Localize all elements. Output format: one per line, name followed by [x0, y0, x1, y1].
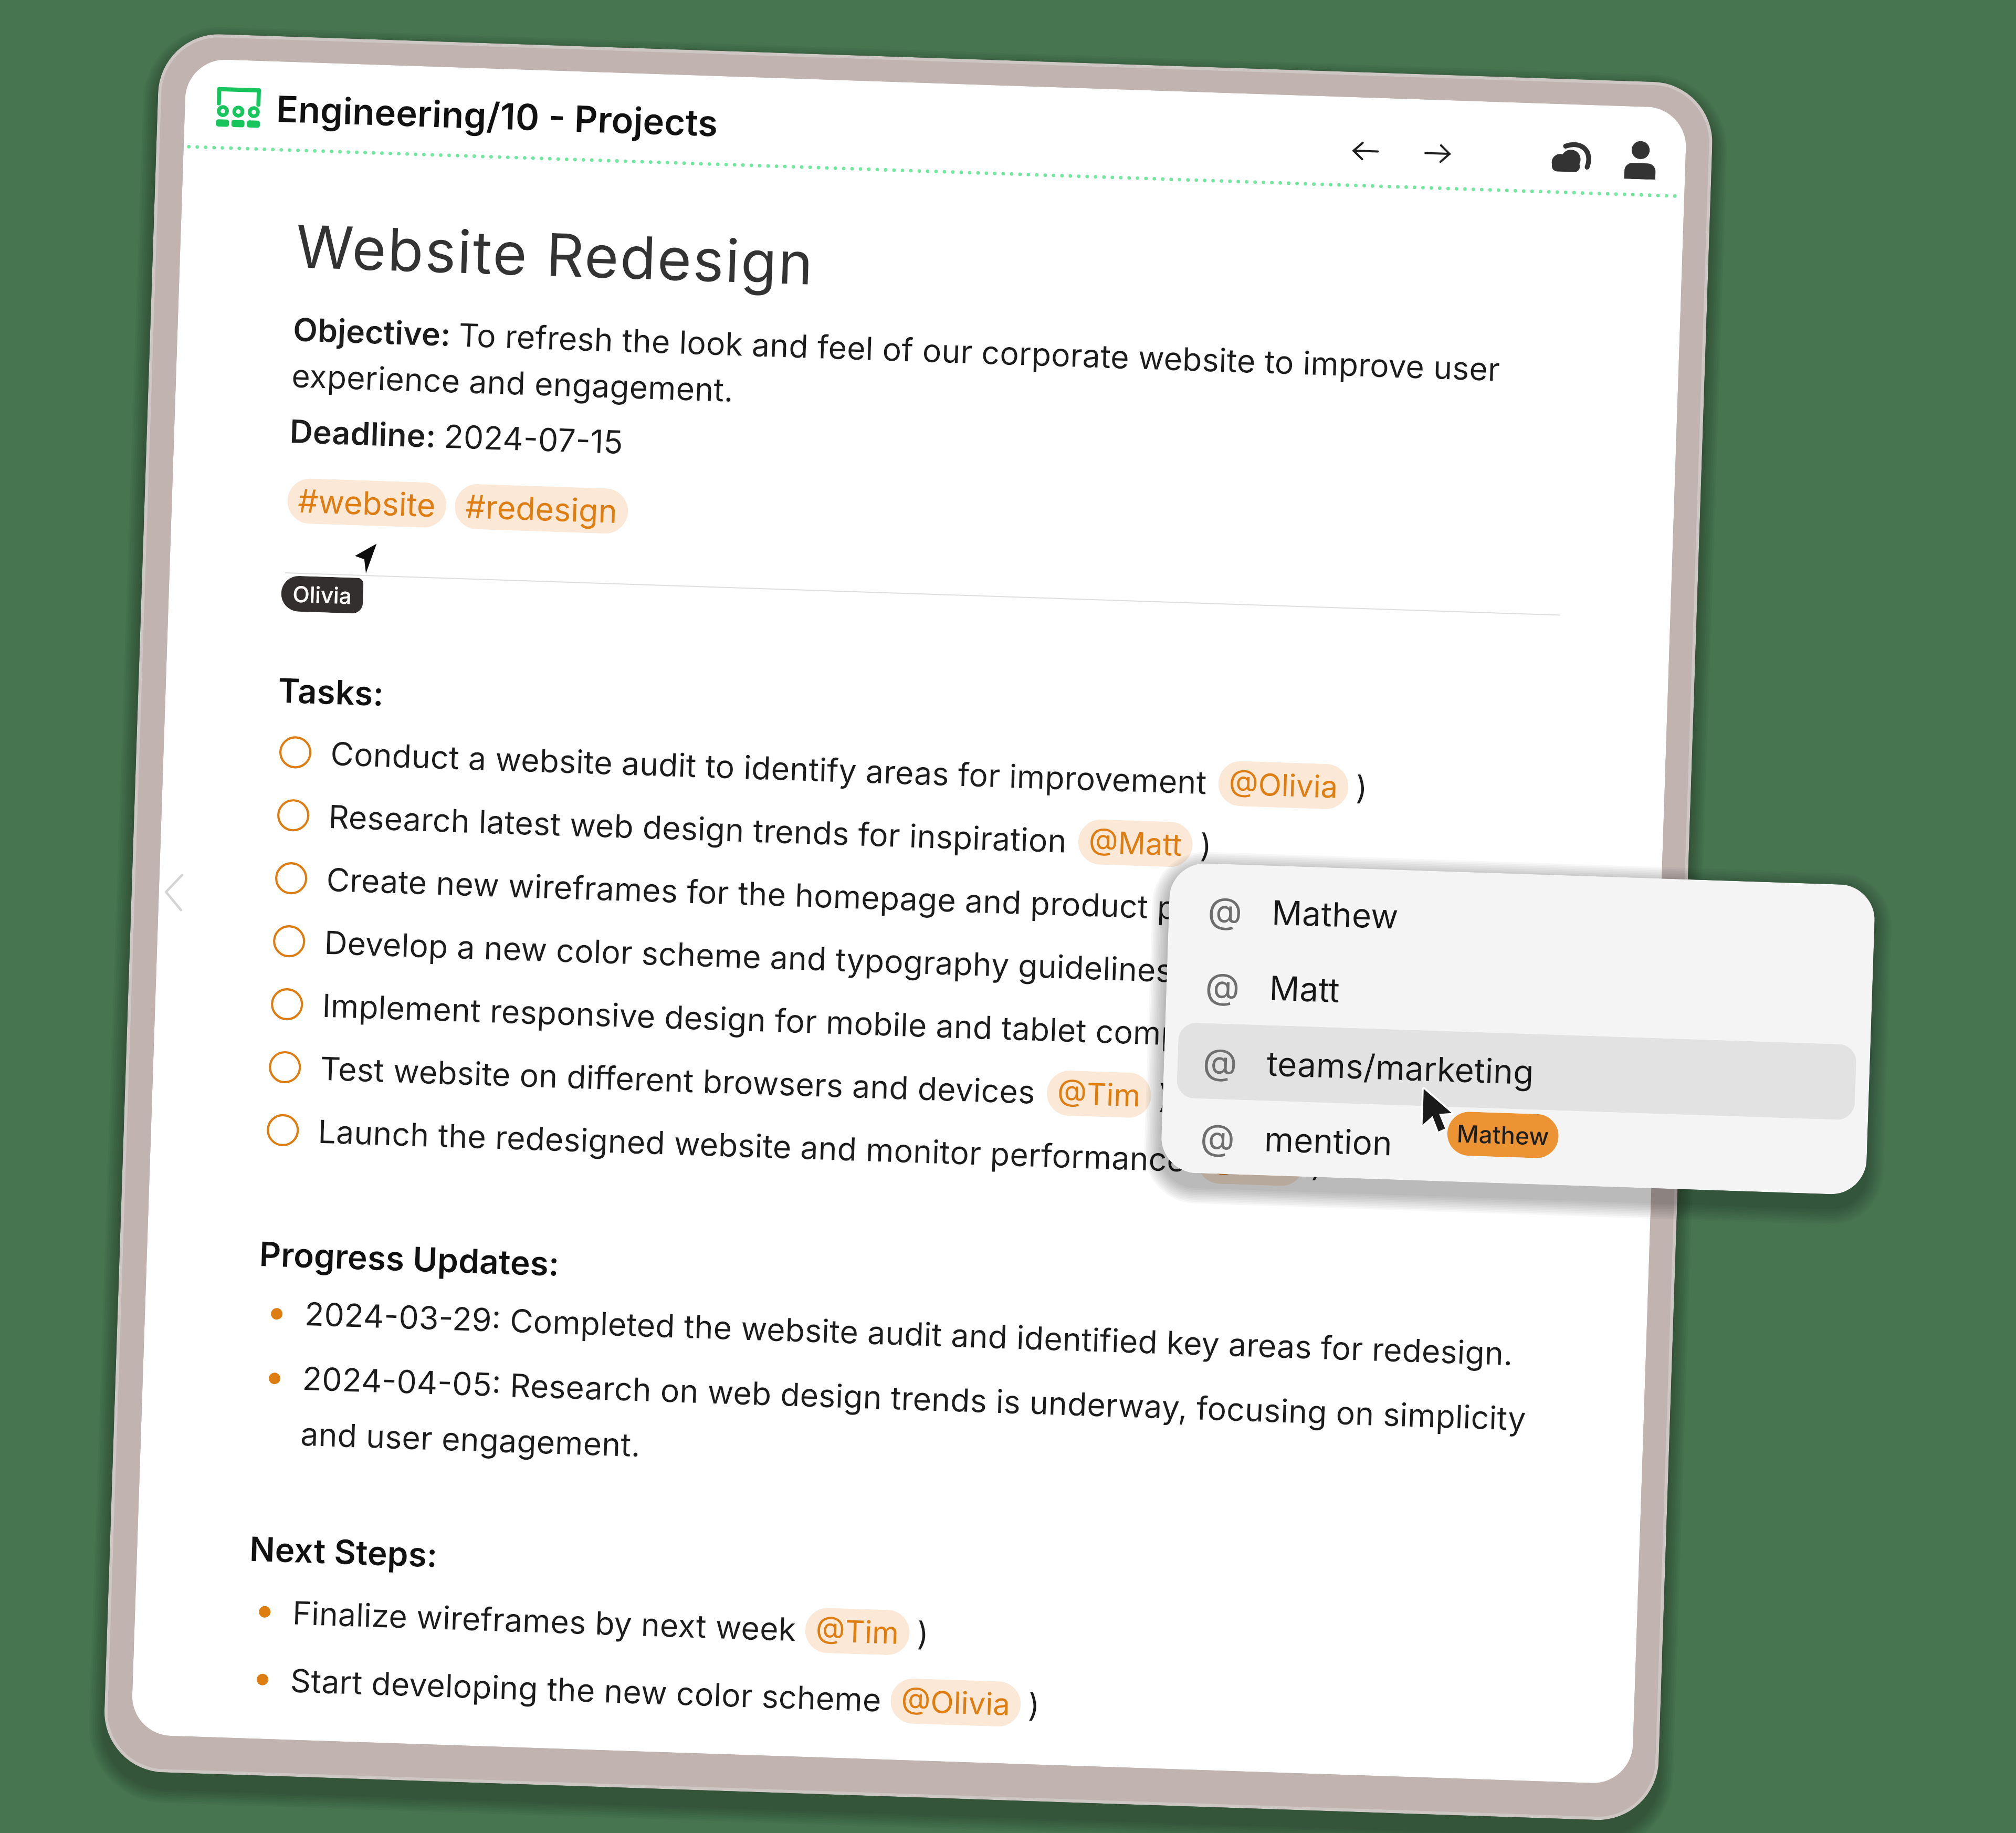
staticText: @Leo — [1311, 1020, 1395, 1059]
staticText: ) — [1027, 1686, 1041, 1725]
button[interactable]: Account — [1613, 133, 1667, 187]
staticText: Next Steps: — [249, 1528, 439, 1575]
button[interactable]: @ — [1179, 947, 1859, 1045]
staticText: Progress Updates: — [259, 1233, 560, 1284]
staticText: Olivia — [292, 580, 352, 609]
button[interactable]: @Sarah — [1261, 888, 1396, 938]
button[interactable]: #redesign — [454, 483, 629, 534]
staticText: ) — [916, 1614, 930, 1653]
staticText: Start developing the new color scheme — [290, 1661, 891, 1720]
staticText: Tasks: — [277, 670, 385, 714]
staticText: ) — [1311, 1145, 1324, 1184]
staticText: ) — [1294, 955, 1307, 994]
staticText: @Matt — [1088, 823, 1183, 863]
button[interactable]: @ — [1181, 871, 1862, 969]
staticText: ) — [1158, 1077, 1171, 1116]
staticText: Test website on different browsers and d… — [319, 1049, 1036, 1111]
button[interactable]: Forward — [1411, 126, 1465, 181]
button[interactable]: @ — [1176, 1022, 1857, 1120]
staticText: Research latest web design trends for in… — [328, 797, 1067, 860]
button[interactable]: @Mia — [1184, 948, 1288, 997]
staticText: Website Redesign — [295, 210, 815, 299]
staticText: @Sarah — [1272, 892, 1386, 933]
staticText: Develop a new color scheme and typograph… — [324, 923, 1173, 990]
staticText: teams/marketing — [1266, 1043, 1535, 1092]
staticText: @Olivia — [900, 1682, 1011, 1723]
button[interactable]: @ — [1174, 1098, 1854, 1195]
staticText: ) — [1199, 826, 1213, 865]
button[interactable]: @Tim — [804, 1607, 910, 1656]
staticText: Deadline: 2024-07-15 — [289, 412, 624, 462]
staticText: Matt — [1269, 967, 1341, 1010]
staticText: @Ana — [1207, 1142, 1294, 1182]
staticText: Engineering/10 - Projects — [276, 87, 719, 145]
button[interactable]: @Tim — [1046, 1070, 1152, 1119]
staticText: Mathew — [1271, 892, 1399, 937]
staticText: ) — [1355, 768, 1369, 807]
staticText: @Mia — [1194, 953, 1277, 992]
staticText: #redesign — [465, 487, 618, 531]
staticText: 2024-03-29: Completed the website audit … — [304, 1294, 1514, 1373]
button[interactable]: @Olivia — [890, 1678, 1021, 1727]
staticText: @ — [1202, 1039, 1238, 1084]
staticText: Objective: To refresh the look and feel … — [291, 310, 1548, 437]
button[interactable]: @Matt — [1078, 819, 1193, 868]
staticText: ) — [1411, 1022, 1425, 1061]
button[interactable]: @Olivia — [1218, 760, 1349, 810]
staticText: Implement responsive design for mobile a… — [322, 986, 1290, 1057]
staticText: 2024-04-05: Research on web design trend… — [300, 1359, 1571, 1495]
staticText: Mathew — [1456, 1119, 1550, 1151]
staticText: @ — [1205, 964, 1241, 1008]
staticText: @Olivia — [1228, 765, 1339, 805]
staticText: @Tim — [815, 1612, 900, 1651]
staticText: Conduct a website audit to identify area… — [330, 734, 1207, 802]
staticText: Launch the redesigned website and monito… — [317, 1112, 1186, 1180]
staticText: Create new wireframes for the homepage a… — [326, 860, 1251, 929]
staticText: #website — [297, 481, 437, 525]
button[interactable]: #website — [287, 478, 447, 528]
button[interactable]: Previous page — [158, 869, 197, 916]
button[interactable]: Back — [1338, 124, 1393, 178]
button[interactable]: @Ana — [1197, 1138, 1305, 1187]
button[interactable]: @Leo — [1300, 1015, 1405, 1064]
staticText: mention — [1264, 1119, 1393, 1163]
staticText: @ — [1200, 1115, 1236, 1159]
staticText: @Tim — [1057, 1074, 1141, 1114]
staticText: @ — [1207, 888, 1243, 932]
button[interactable]: Sync to cloud — [1543, 131, 1597, 185]
staticText: Finalize wireframes by next week — [292, 1593, 806, 1649]
